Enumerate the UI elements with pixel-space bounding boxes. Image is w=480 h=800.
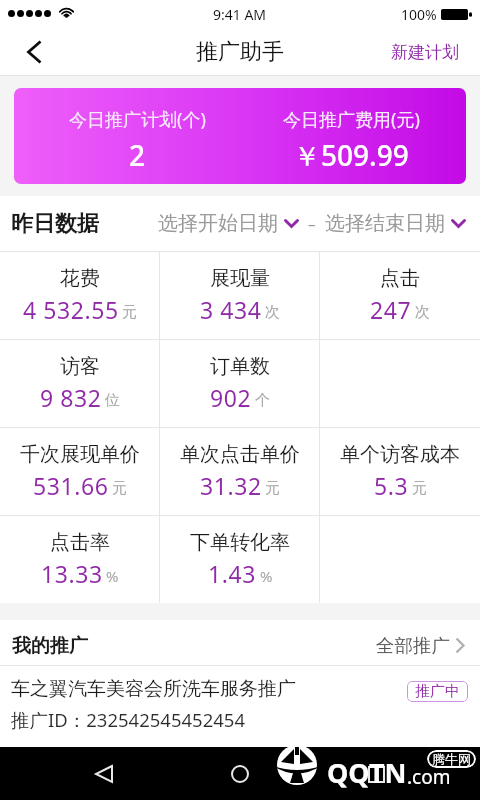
button[interactable]: 千次展现单价: [0, 428, 160, 515]
staticText: 位: [105, 391, 120, 410]
staticText: 次: [415, 303, 430, 322]
button[interactable]: 单个访客成本: [320, 428, 480, 515]
button[interactable]: 访客: [0, 340, 160, 427]
staticText: 下单转化率: [190, 530, 290, 555]
staticText: 腾牛网: [432, 751, 471, 767]
staticText: 元: [265, 479, 280, 498]
button[interactable]: Home: [216, 750, 264, 798]
button[interactable]: Recents: [352, 750, 400, 798]
button[interactable]: 点击: [320, 252, 480, 339]
button[interactable]: 花费: [0, 252, 160, 339]
staticText: %: [106, 566, 119, 586]
staticText: 推广ID：232542545452454: [11, 707, 246, 732]
staticText: 个: [255, 391, 270, 410]
staticText: 访客: [60, 354, 100, 379]
staticText: 13.33: [41, 558, 103, 589]
staticText: 3 434: [200, 294, 262, 325]
staticText: 昨日数据: [11, 210, 99, 238]
button[interactable]: 展现量: [160, 252, 320, 339]
button[interactable]: Back: [0, 28, 70, 76]
button[interactable]: 新建计划: [375, 28, 480, 76]
staticText: .com: [407, 764, 451, 790]
staticText: 次: [265, 303, 280, 322]
button[interactable]: Back: [80, 750, 128, 798]
button[interactable]: 选择开始日期: [158, 211, 299, 236]
staticText: 车之翼汽车美容会所洗车服务推广: [11, 677, 296, 701]
staticText: 推广助手: [196, 38, 284, 66]
staticText: 9 832: [40, 382, 102, 413]
staticText: ￥509.99: [293, 136, 409, 174]
staticText: 订单数: [210, 354, 270, 379]
staticText: 100%: [401, 5, 437, 24]
staticText: 902: [210, 382, 252, 413]
staticText: 今日推广费用(元): [283, 107, 420, 132]
staticText: 选择开始日期: [158, 211, 278, 236]
button[interactable]: 点击率: [0, 516, 160, 603]
staticText: 今日推广计划(个): [69, 107, 206, 132]
staticText: 选择结束日期: [325, 211, 445, 236]
staticText: 247: [370, 294, 412, 325]
staticText: 1.43: [208, 558, 257, 589]
button[interactable]: 订单数: [160, 340, 320, 427]
staticText: 点击率: [50, 530, 110, 555]
staticText: 点击: [380, 266, 420, 291]
staticText: 我的推广: [12, 634, 88, 658]
staticText: 展现量: [210, 266, 270, 291]
staticText: 花费: [60, 266, 100, 291]
button[interactable]: 我的推广: [0, 620, 480, 666]
staticText: 4 532.55: [23, 294, 119, 325]
staticText: 2: [129, 136, 146, 174]
staticText: 元: [412, 479, 427, 498]
staticText: 推广中: [415, 682, 460, 701]
staticText: 元: [112, 479, 127, 498]
staticText: 31.32: [200, 470, 262, 501]
staticText: QQTN: [327, 754, 407, 791]
button[interactable]: 选择结束日期: [325, 211, 466, 236]
staticText: 5.3: [374, 470, 409, 501]
button[interactable]: 今日推广计划(个): [14, 88, 466, 184]
staticText: 新建计划: [391, 42, 459, 63]
staticText: %: [260, 566, 273, 586]
button[interactable]: 单次点击单价: [160, 428, 320, 515]
staticText: 531.66: [33, 470, 109, 501]
staticText: 9:41 AM: [213, 5, 267, 24]
staticText: 元: [122, 303, 137, 322]
staticText: 单次点击单价: [180, 442, 300, 467]
button[interactable]: 车之翼汽车美容会所洗车服务推广: [0, 666, 480, 732]
staticText: 千次展现单价: [20, 442, 140, 467]
staticText: –: [308, 214, 316, 234]
button[interactable]: 下单转化率: [160, 516, 320, 603]
staticText: 单个访客成本: [340, 442, 460, 467]
staticText: 全部推广: [376, 634, 450, 657]
